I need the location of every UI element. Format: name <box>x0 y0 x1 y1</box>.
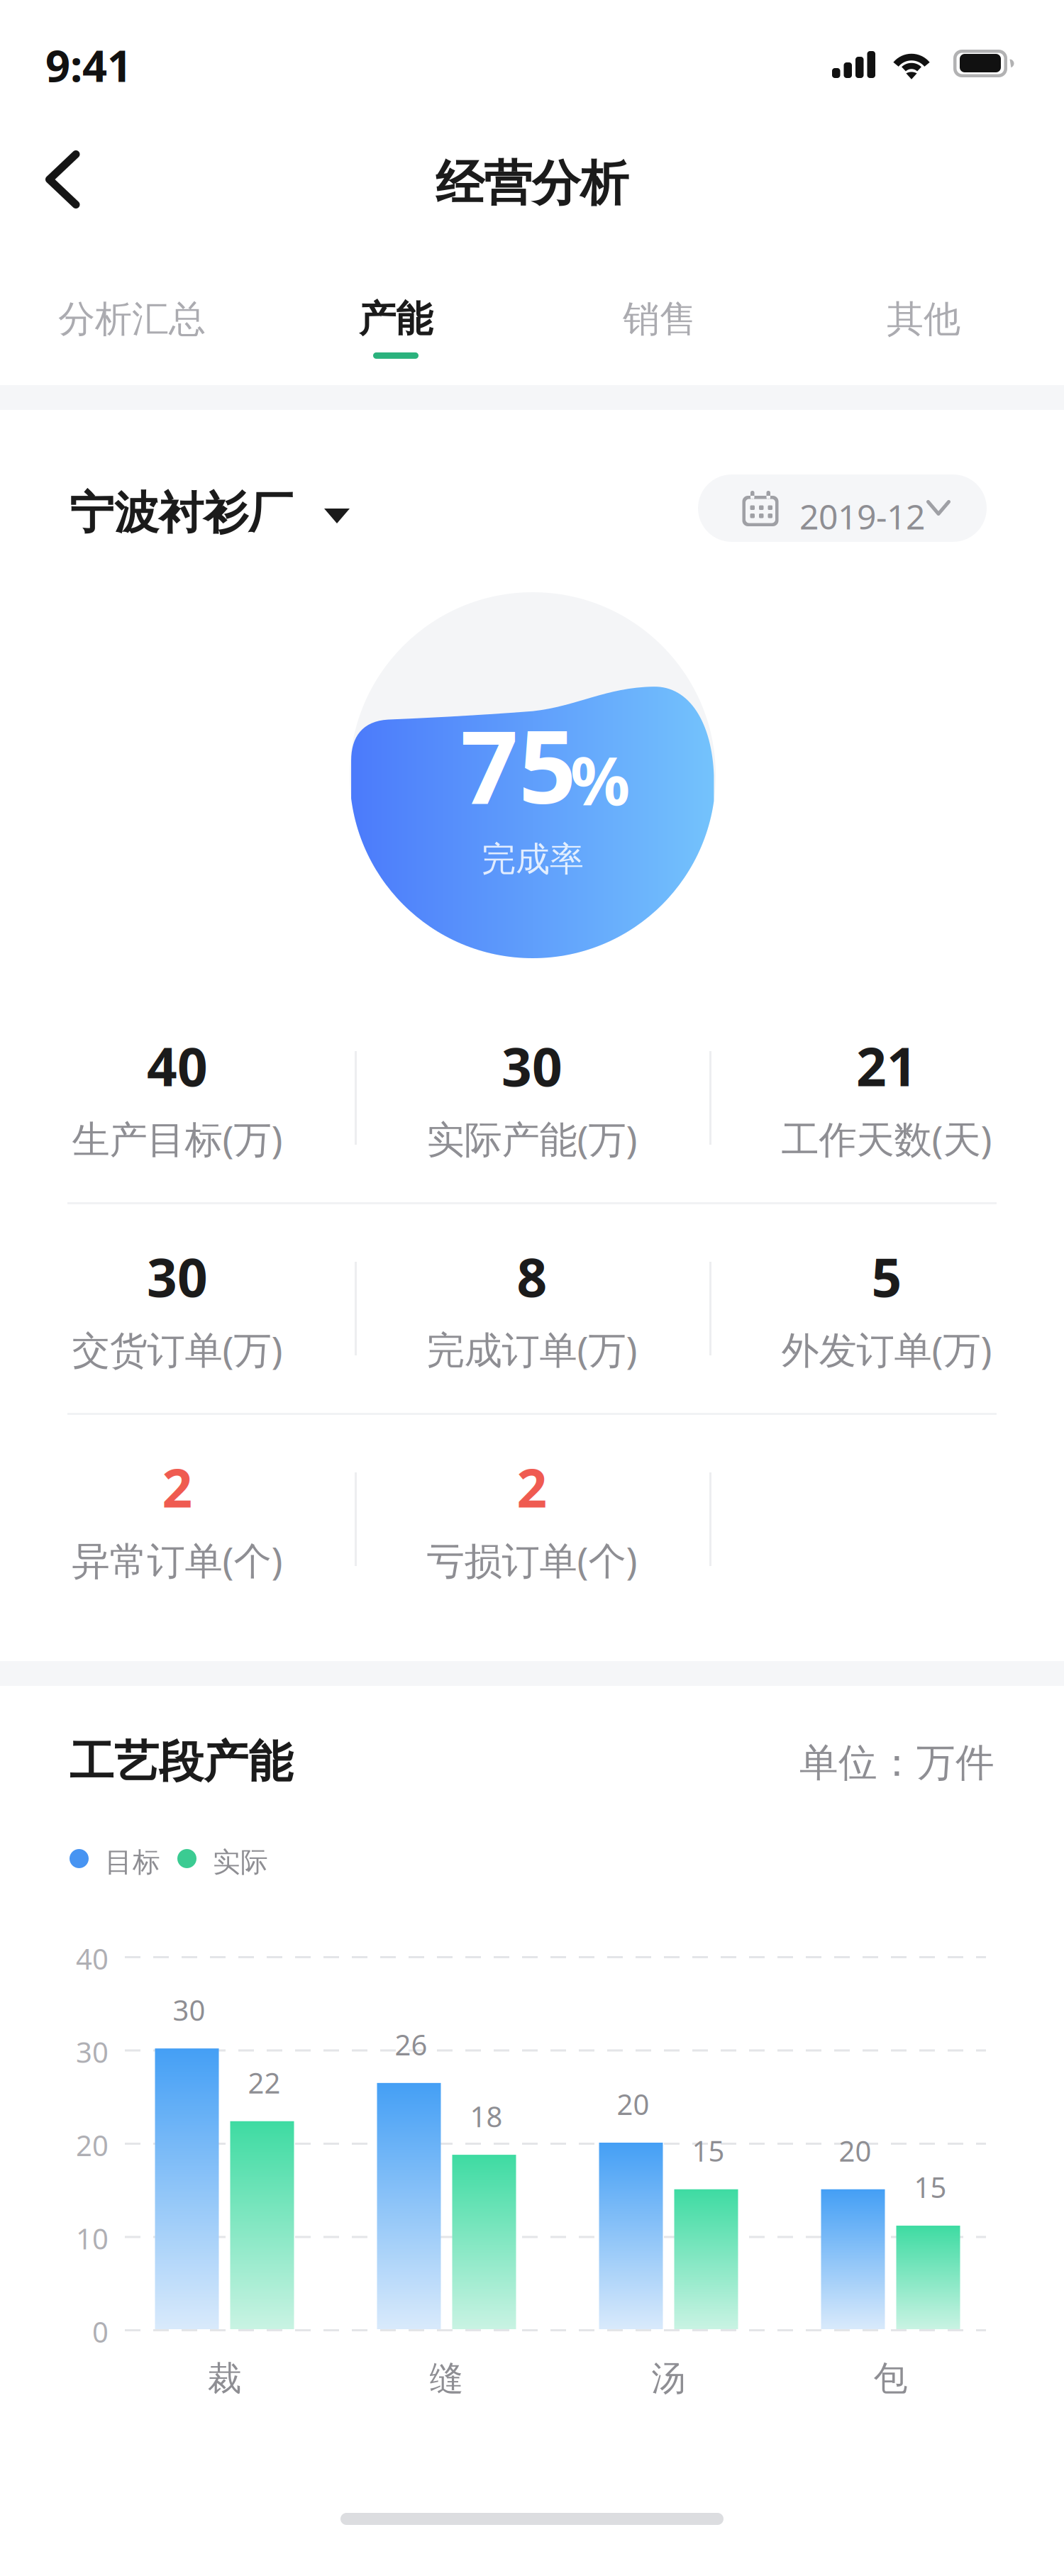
staticText: 工艺段产能 <box>70 1735 293 1789</box>
staticText: 裁 <box>207 2358 242 2399</box>
button[interactable]: 分析汇总 <box>0 296 264 374</box>
staticText: 工作天数(天) <box>781 1114 992 1164</box>
staticText: 20 <box>839 2132 871 2170</box>
staticText: 亏损订单(个) <box>427 1535 637 1585</box>
staticText: 分析汇总 <box>58 296 206 342</box>
staticText: % <box>570 735 630 823</box>
staticText: 生产目标(万) <box>72 1114 283 1164</box>
staticText: 75 <box>460 697 577 832</box>
staticText: 实际产能(万) <box>427 1114 637 1164</box>
staticText: 30 <box>501 1031 563 1101</box>
staticText: 21 <box>856 1031 917 1101</box>
staticText: 包 <box>874 2358 908 2399</box>
staticText: 2 <box>517 1452 547 1522</box>
staticText: 20 <box>76 2126 109 2164</box>
staticText: 目标 <box>105 1845 160 1879</box>
staticText: 5 <box>871 1241 902 1312</box>
staticText: 单位：万件 <box>799 1739 994 1787</box>
staticText: 26 <box>395 2025 427 2063</box>
staticText: 宁波衬衫厂 <box>70 486 293 540</box>
staticText: 30 <box>173 1991 205 2029</box>
staticText: 异常订单(个) <box>72 1535 283 1585</box>
button[interactable]: 销售 <box>528 296 792 374</box>
staticText: 40 <box>76 1940 109 1977</box>
button[interactable]: 其他 <box>792 296 1055 374</box>
staticText: 10 <box>76 2220 109 2257</box>
staticText: 0 <box>92 2313 109 2351</box>
staticText: 9:41 <box>45 36 132 94</box>
staticText: 2 <box>162 1452 193 1522</box>
staticText: 18 <box>470 2097 503 2135</box>
button[interactable]: 2019-12 <box>698 474 987 542</box>
staticText: 2019-12 <box>799 494 925 539</box>
button[interactable]: 返回 <box>0 128 119 231</box>
staticText: 销售 <box>623 296 697 342</box>
staticText: 汤 <box>652 2358 686 2399</box>
staticText: 外发订单(万) <box>781 1324 992 1374</box>
button[interactable]: 产能 <box>264 296 528 374</box>
staticText: 40 <box>147 1031 208 1101</box>
staticText: 8 <box>517 1241 547 1312</box>
staticText: 交货订单(万) <box>72 1324 283 1374</box>
staticText: 30 <box>76 2033 109 2071</box>
staticText: 30 <box>147 1241 208 1312</box>
staticText: 产能 <box>359 296 433 342</box>
staticText: 15 <box>692 2132 725 2170</box>
staticText: 实际 <box>213 1845 268 1879</box>
staticText: 完成订单(万) <box>427 1324 637 1374</box>
staticText: 其他 <box>887 296 960 342</box>
staticText: 缝 <box>430 2358 464 2399</box>
staticText: 20 <box>617 2085 649 2123</box>
staticText: 经营分析 <box>436 154 628 213</box>
staticText: 15 <box>914 2168 947 2206</box>
button[interactable]: 宁波衬衫厂 <box>54 467 365 559</box>
staticText: 完成率 <box>482 838 584 880</box>
staticText: 22 <box>248 2064 281 2101</box>
